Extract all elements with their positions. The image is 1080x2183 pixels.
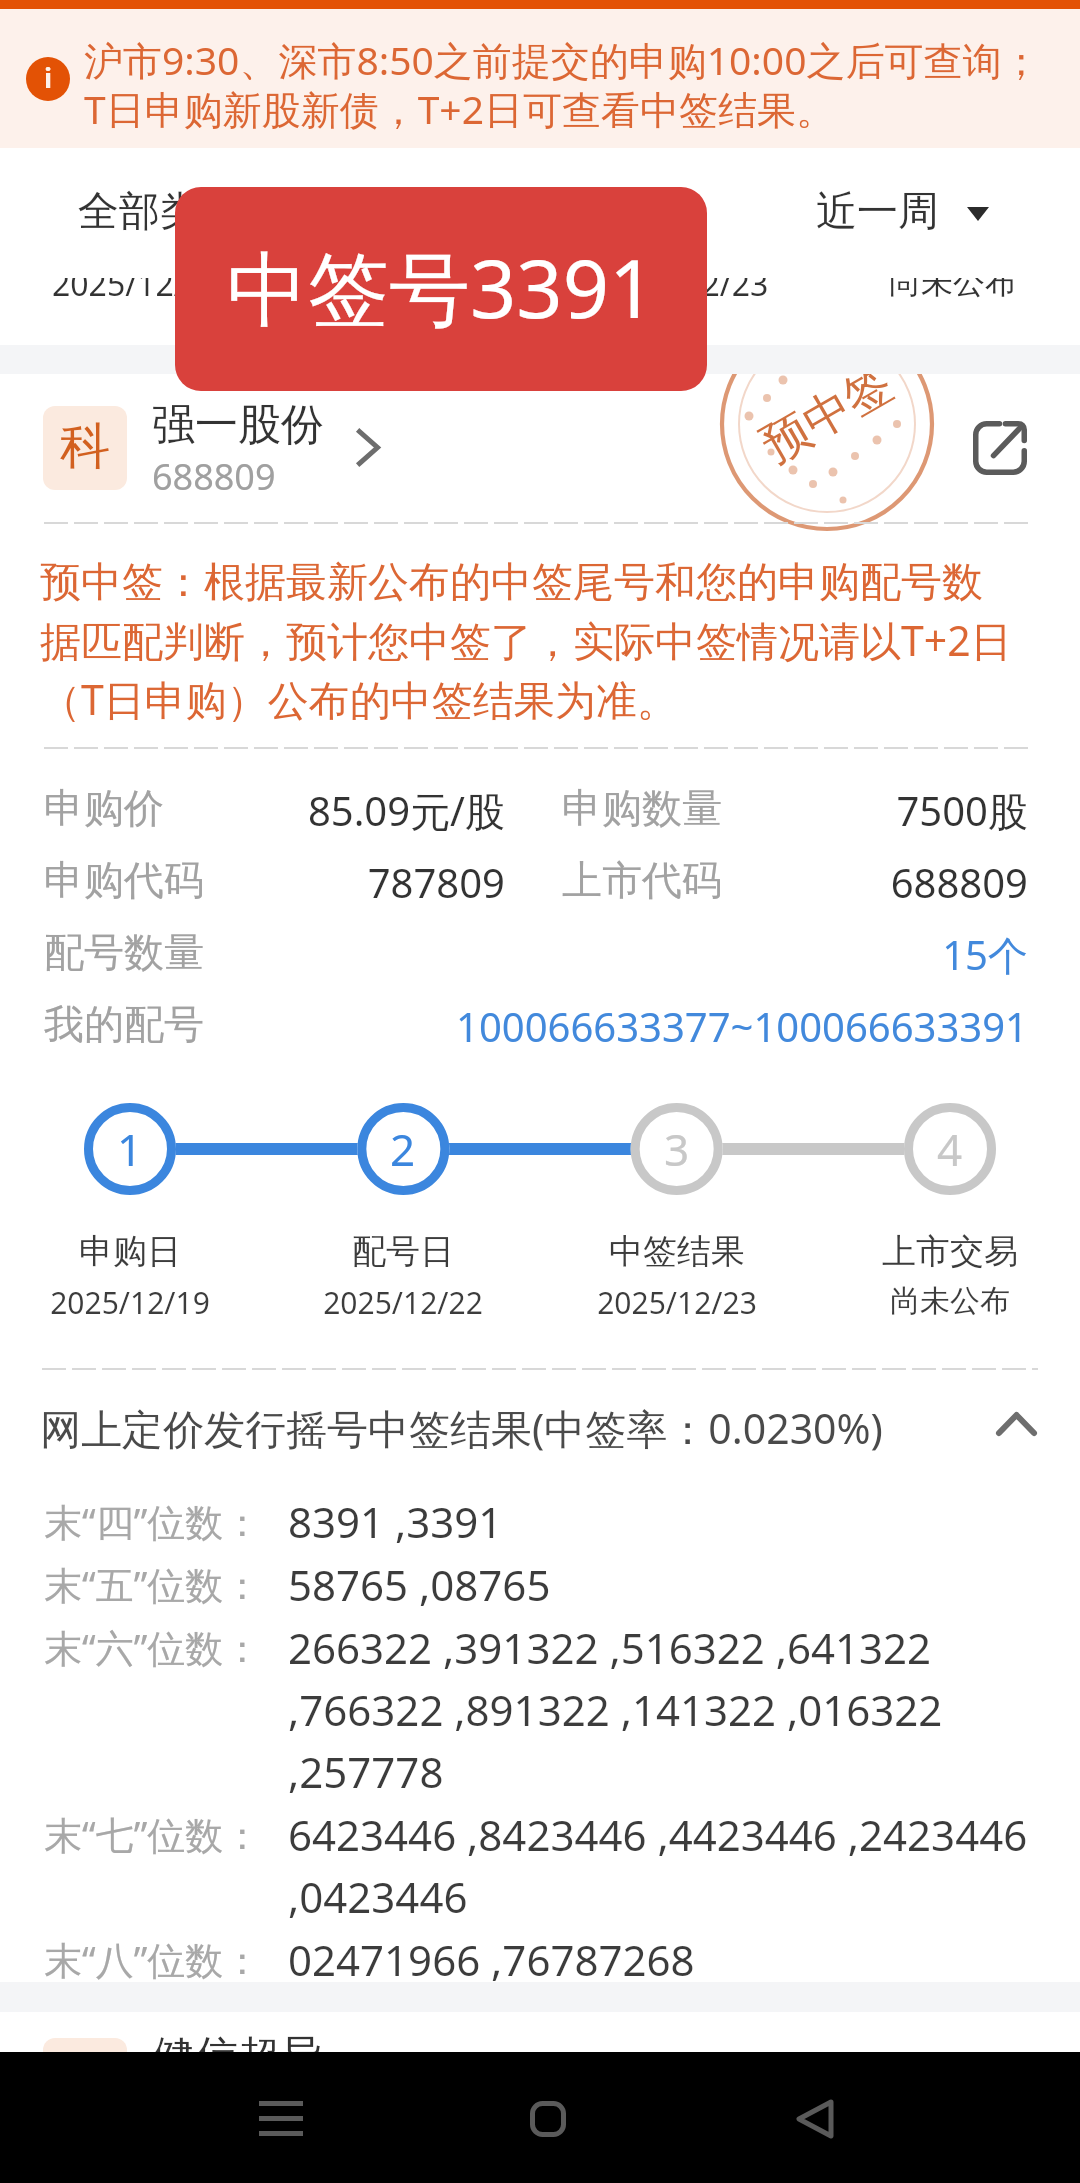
button[interactable]: 网上定价发行摇号中签结果(中签率：0.0230%) (0, 1370, 1080, 1470)
staticText: 中签号3391 (227, 231, 656, 342)
staticText: 2025/12/22 (326, 262, 497, 302)
staticText: 预中签 (752, 374, 903, 475)
button[interactable]: Open in new window (945, 393, 1055, 503)
staticText: 2025/12/19 (10, 1282, 250, 1323)
staticText: 末“四”位数： (44, 1495, 262, 1547)
staticText: 58765 ,08765 (288, 1556, 551, 1613)
staticText: 申购价 (44, 783, 164, 833)
staticText: 7500股 (760, 783, 1028, 838)
staticText: 近一周 (816, 186, 939, 238)
staticText: 1 (117, 1119, 143, 1179)
button[interactable]: 科 (0, 374, 1080, 522)
staticText: 申购数量 (562, 783, 722, 833)
staticText: 全部类型 (78, 186, 242, 238)
staticText: 85.09元/股 (240, 783, 505, 838)
staticText: 末“七”位数： (44, 1808, 262, 1860)
button[interactable]: Recent apps (201, 2052, 361, 2183)
staticText: 2025/12/19 (52, 262, 223, 302)
staticText: 申购日 (10, 1230, 250, 1273)
staticText: 2025/12/23 (598, 262, 769, 302)
staticText: 沪市9:30、深市8:50之前提交的申购10:00之后可查询； T日申购新股新债… (84, 33, 1080, 135)
staticText: 100066633377~100066633391 (0, 999, 1028, 1053)
staticText: 02471966 ,76787268 (288, 1931, 695, 1988)
staticText: 我的配号 (44, 999, 204, 1049)
staticText: 3 (664, 1119, 690, 1179)
staticText: 健信超导 (152, 2030, 324, 2084)
button[interactable]: Home (468, 2052, 628, 2183)
button[interactable]: 近一周 (816, 186, 989, 238)
staticText: 尚未公布 (889, 262, 1017, 302)
staticText: 787809 (240, 855, 505, 909)
staticText: 配号日 (283, 1230, 523, 1273)
staticText: 预中签：根据最新公布的中签尾号和您的申购配号数 据匹配判断，预计您中签了，实际中… (40, 557, 1012, 727)
staticText: 4 (937, 1119, 963, 1179)
staticText: 末“五”位数： (44, 1558, 262, 1610)
staticText: 末“六”位数： (44, 1621, 262, 1673)
staticText: i (44, 59, 53, 96)
staticText: 2 (390, 1119, 416, 1179)
staticText: 申购代码 (44, 855, 204, 905)
staticText: 上市交易 (830, 1230, 1070, 1273)
staticText: 网上定价发行摇号中签结果(中签率：0.0230%) (40, 1400, 883, 1456)
staticText: 8391 ,3391 (288, 1493, 503, 1550)
staticText: 266322 ,391322 ,516322 ,641322 ,766322 ,… (288, 1619, 943, 1800)
staticText: 强一股份 (152, 398, 324, 452)
staticText: 688809 (152, 452, 276, 501)
button[interactable]: 全部类型 (78, 186, 242, 238)
staticText: 末“八”位数： (44, 1933, 262, 1985)
staticText: 15个 (0, 927, 1028, 982)
staticText: 配号数量 (44, 927, 204, 977)
staticText: 2025/12/23 (557, 1282, 797, 1323)
staticText: 2025/12/22 (283, 1282, 523, 1323)
staticText: 中签结果 (557, 1230, 797, 1273)
button[interactable]: Back (735, 2052, 895, 2183)
staticText: 尚未公布 (830, 1282, 1070, 1320)
staticText: 上市代码 (562, 855, 722, 905)
staticText: 688809 (760, 855, 1028, 909)
staticText: 科 (60, 415, 110, 478)
staticText: 6423446 ,8423446 ,4423446 ,2423446 ,0423… (288, 1806, 1028, 1925)
